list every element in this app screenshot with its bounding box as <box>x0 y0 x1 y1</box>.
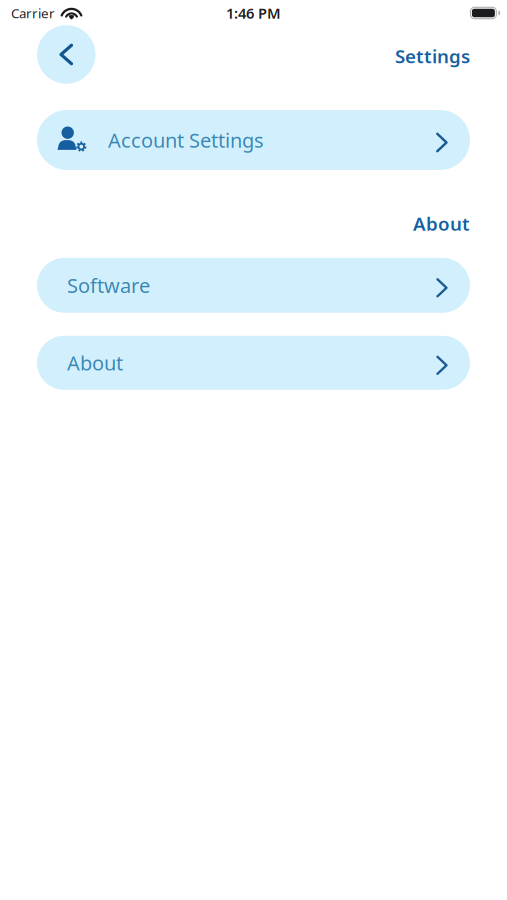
staticText: 1:46 PM <box>226 3 281 23</box>
staticText: About <box>67 349 123 376</box>
staticText: About <box>413 211 470 236</box>
staticText: Software <box>67 272 150 299</box>
button[interactable]: About <box>37 336 470 390</box>
button[interactable]: Account Settings <box>37 110 470 170</box>
staticText: Account Settings <box>108 127 264 153</box>
staticText: Carrier <box>11 4 55 22</box>
button[interactable]: Software <box>37 258 470 313</box>
button[interactable]: Back <box>37 27 95 85</box>
staticText: Settings <box>395 44 470 68</box>
